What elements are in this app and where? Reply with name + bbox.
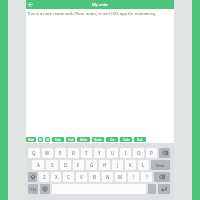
- staticText: I: [125, 150, 127, 156]
- staticText: P: [150, 150, 153, 156]
- button[interactable]: Backspace: [154, 172, 170, 182]
- button[interactable]: Y: [94, 148, 105, 158]
- staticText: H2: [46, 138, 50, 142]
- staticText: F: [77, 162, 80, 168]
- button[interactable]: Quote: [92, 137, 104, 142]
- staticText: Italic: [55, 138, 62, 142]
- staticText: E: [59, 150, 62, 156]
- button[interactable]: Emoji: [40, 184, 50, 194]
- button[interactable]: Back: [26, 0, 35, 9]
- staticText: .: [152, 187, 153, 192]
- staticText: A: [37, 162, 40, 168]
- button[interactable]: L: [138, 160, 149, 170]
- button[interactable]: H2: [45, 137, 50, 142]
- staticText: Code: [123, 138, 130, 142]
- staticText: Link: [68, 138, 74, 142]
- staticText: Task: [137, 138, 143, 142]
- staticText: L: [142, 162, 145, 168]
- staticText: Y: [98, 150, 101, 156]
- button[interactable]: Strike: [77, 137, 90, 142]
- staticText: Done: [156, 163, 165, 168]
- staticText: Z: [43, 174, 46, 180]
- staticText: Bold: [28, 138, 34, 142]
- staticText: List: [110, 138, 115, 142]
- button[interactable]: V: [76, 172, 87, 182]
- button[interactable]: U: [107, 148, 118, 158]
- button[interactable]: I: [120, 148, 131, 158]
- button[interactable]: Bold: [26, 137, 36, 142]
- button[interactable]: X: [51, 172, 61, 182]
- staticText: ?: [146, 174, 148, 180]
- staticText: Q: [32, 150, 36, 156]
- button[interactable]: Z: [39, 172, 49, 182]
- staticText: Strike: [80, 138, 88, 142]
- button[interactable]: F: [73, 160, 84, 170]
- staticText: K: [129, 162, 132, 168]
- staticText: V: [80, 174, 83, 180]
- button[interactable]: M: [115, 172, 126, 182]
- button[interactable]: S: [46, 160, 58, 170]
- button[interactable]: Q: [28, 148, 40, 158]
- button[interactable]: B: [89, 172, 100, 182]
- button[interactable]: Task: [134, 137, 146, 142]
- staticText: J: [117, 162, 119, 168]
- button[interactable]: G: [86, 160, 97, 170]
- staticText: R: [72, 150, 75, 156]
- button[interactable]: A: [32, 160, 44, 170]
- button[interactable]: Link: [66, 137, 75, 142]
- button[interactable]: H: [99, 160, 110, 170]
- button[interactable]: ?: [141, 172, 152, 182]
- button[interactable]: Return: [158, 184, 170, 194]
- button[interactable]: P: [146, 148, 157, 158]
- staticText: ?123: [29, 187, 37, 192]
- button[interactable]: E: [55, 148, 66, 158]
- staticText: D: [64, 162, 68, 168]
- button[interactable]: Done: [151, 160, 170, 170]
- staticText: H: [103, 162, 107, 168]
- button[interactable]: .: [148, 184, 156, 194]
- staticText: U: [111, 150, 115, 156]
- button[interactable]: Shift: [28, 172, 37, 182]
- button[interactable]: R: [68, 148, 79, 158]
- staticText: H1: [39, 138, 43, 142]
- button[interactable]: D: [60, 160, 71, 170]
- button[interactable]: List: [106, 137, 118, 142]
- staticText: C: [67, 174, 70, 180]
- button[interactable]: !: [128, 172, 139, 182]
- button[interactable]: H1: [38, 137, 43, 142]
- staticText: B: [93, 174, 96, 180]
- button[interactable]: Code: [120, 137, 132, 142]
- button[interactable]: T: [81, 148, 92, 158]
- staticText: S: [51, 162, 54, 168]
- staticText: G: [90, 162, 94, 168]
- button[interactable]: C: [63, 172, 74, 182]
- staticText: Quote: [94, 138, 102, 142]
- staticText: X: [55, 174, 58, 180]
- button[interactable]: Italic: [52, 137, 64, 142]
- staticText: W: [45, 150, 50, 156]
- button[interactable]: N: [102, 172, 113, 182]
- button[interactable]: O: [133, 148, 144, 158]
- button[interactable]: W: [42, 148, 53, 158]
- button[interactable]: K: [125, 160, 136, 170]
- staticText: T: [85, 150, 88, 156]
- button[interactable]: Backspace: [159, 148, 170, 158]
- staticText: !: [133, 174, 135, 180]
- staticText: This is a note made with Pluto notes, a …: [27, 11, 156, 17]
- button[interactable]: J: [112, 160, 123, 170]
- staticText: My note: [92, 2, 108, 7]
- staticText: O: [137, 150, 141, 156]
- button[interactable]: ?123: [28, 184, 38, 194]
- staticText: M: [118, 174, 123, 180]
- staticText: N: [106, 174, 110, 180]
